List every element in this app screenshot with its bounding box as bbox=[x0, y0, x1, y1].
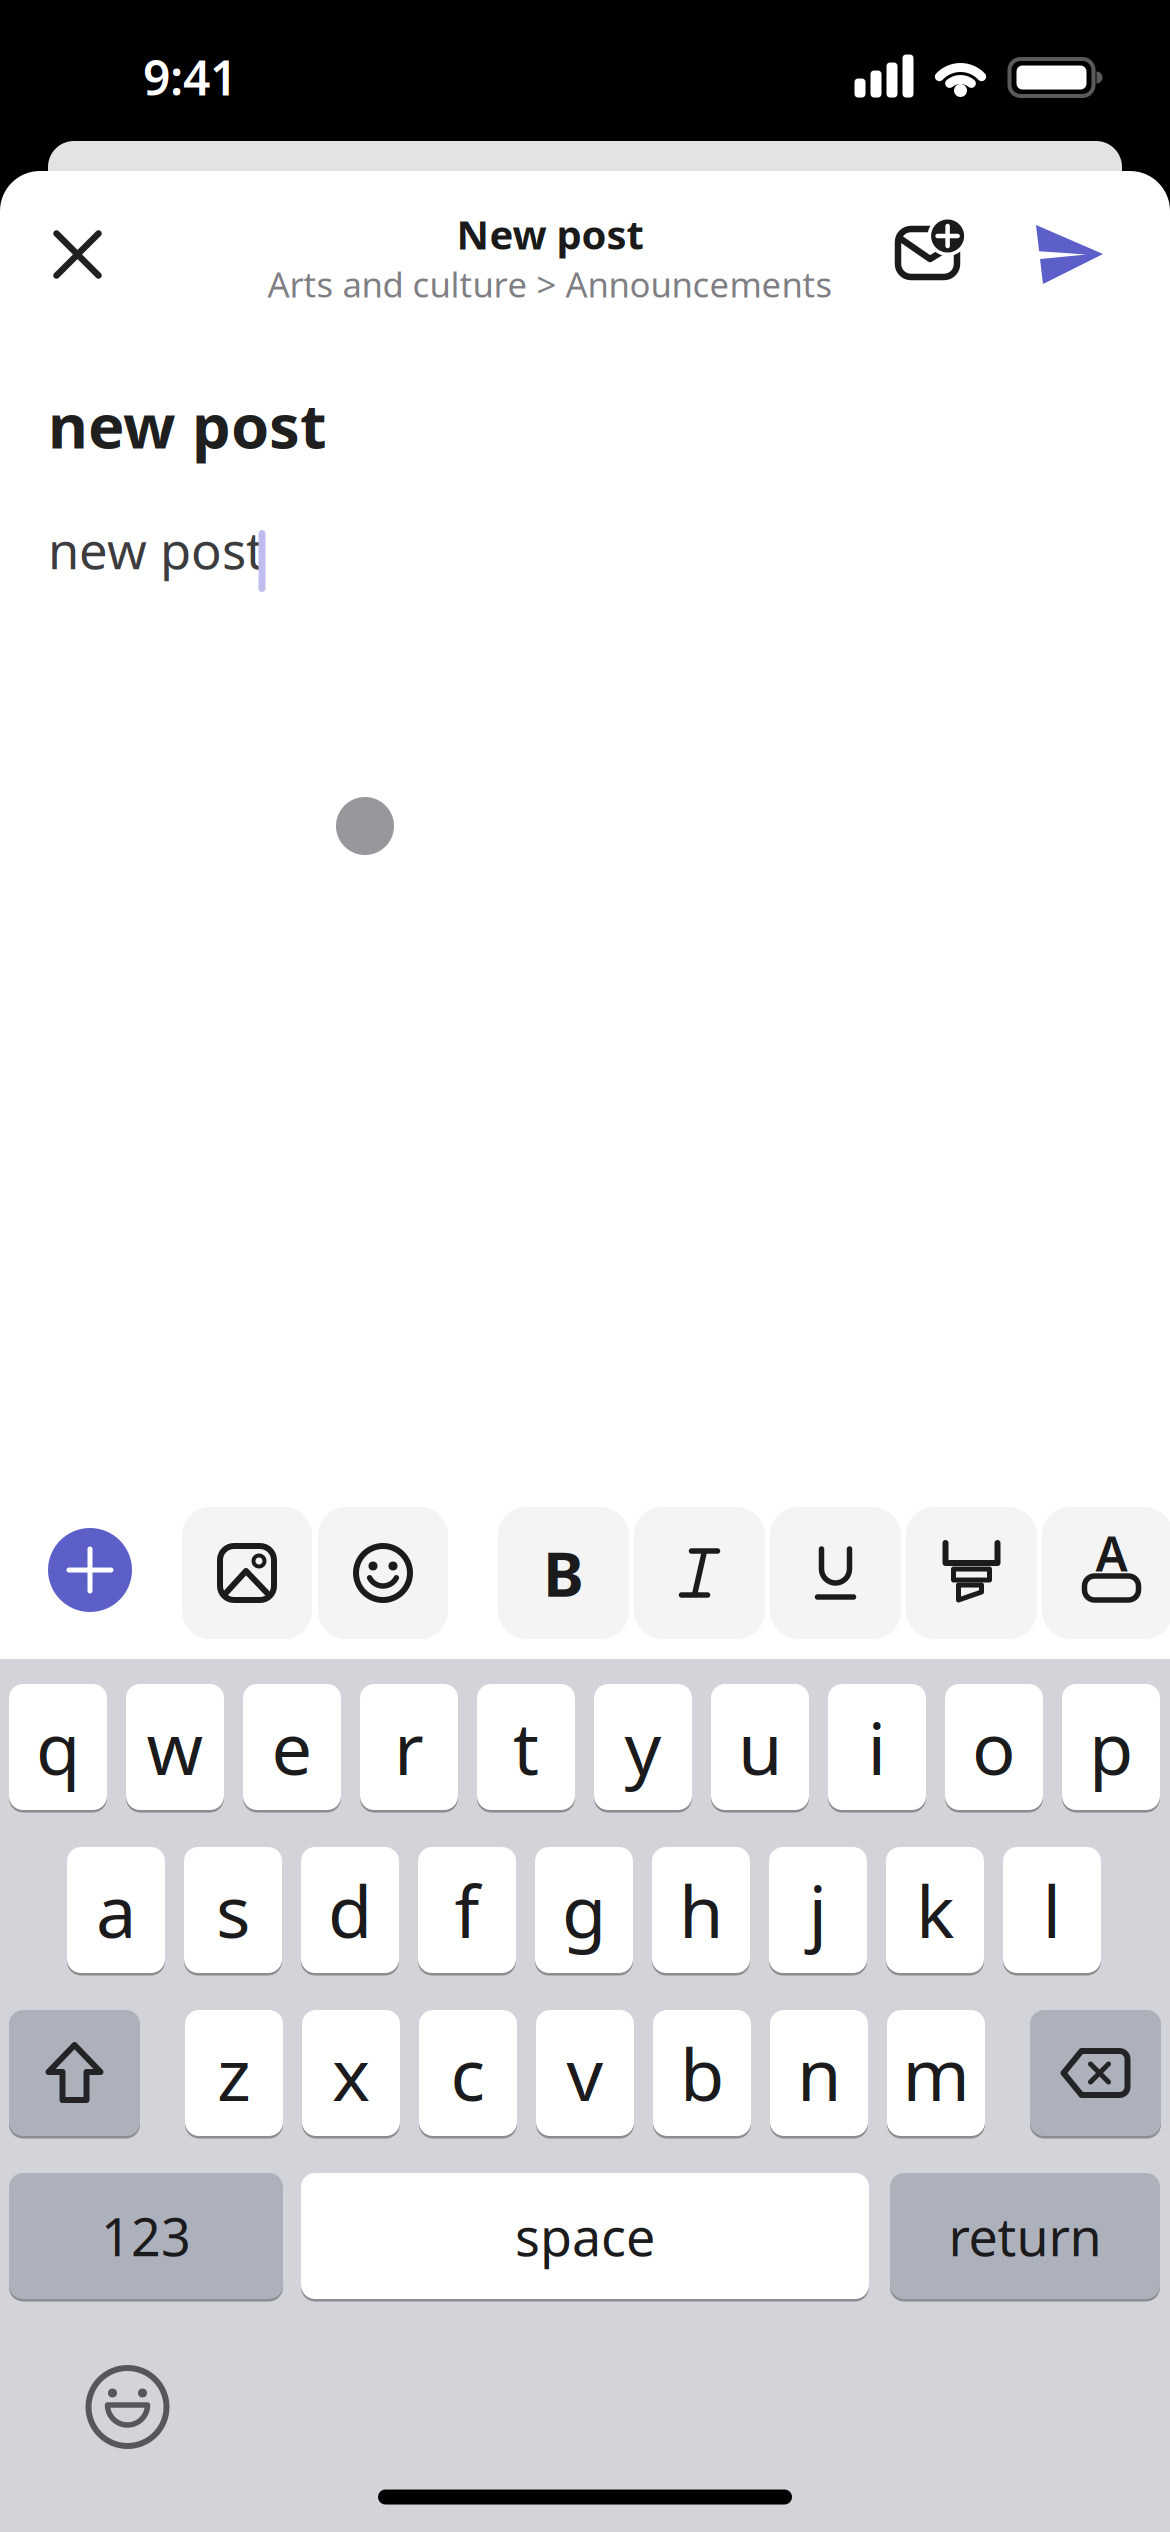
button[interactable] bbox=[318, 1507, 448, 1639]
staticText: f bbox=[454, 1862, 479, 1958]
staticText: n bbox=[797, 2025, 841, 2121]
button[interactable] bbox=[41, 218, 113, 290]
button[interactable]: f bbox=[418, 1847, 516, 1973]
staticText: s bbox=[216, 1862, 250, 1958]
button[interactable] bbox=[82, 2362, 172, 2452]
button[interactable]: s bbox=[184, 1847, 282, 1973]
staticText: new post bbox=[48, 384, 327, 465]
staticText: return bbox=[948, 2201, 1101, 2271]
button[interactable]: j bbox=[769, 1847, 867, 1973]
button[interactable]: c bbox=[419, 2010, 517, 2136]
button[interactable] bbox=[906, 1507, 1037, 1639]
staticText: u bbox=[738, 1699, 782, 1795]
button[interactable]: e bbox=[243, 1684, 341, 1810]
staticText: 123 bbox=[101, 2201, 191, 2271]
button[interactable]: x bbox=[302, 2010, 400, 2136]
staticText: m bbox=[902, 2025, 969, 2121]
staticText: t bbox=[513, 1699, 539, 1795]
button[interactable]: p bbox=[1062, 1684, 1160, 1810]
button[interactable]: h bbox=[652, 1847, 750, 1973]
staticText: 9:41 bbox=[143, 45, 237, 109]
staticText: v bbox=[566, 2025, 603, 2121]
staticText: r bbox=[394, 1699, 424, 1795]
button[interactable] bbox=[48, 1528, 132, 1612]
button[interactable]: space bbox=[301, 2173, 869, 2299]
button[interactable]: v bbox=[536, 2010, 634, 2136]
button[interactable] bbox=[1030, 2010, 1161, 2136]
button[interactable]: m bbox=[887, 2010, 985, 2136]
staticText: d bbox=[328, 1862, 372, 1958]
button[interactable]: d bbox=[301, 1847, 399, 1973]
button[interactable]: i bbox=[828, 1684, 926, 1810]
button[interactable]: u bbox=[711, 1684, 809, 1810]
button[interactable]: k bbox=[886, 1847, 984, 1973]
button[interactable]: B bbox=[498, 1507, 629, 1639]
button[interactable]: w bbox=[126, 1684, 224, 1810]
button[interactable]: r bbox=[360, 1684, 458, 1810]
staticText: o bbox=[972, 1699, 1016, 1795]
staticText: c bbox=[450, 2025, 485, 2121]
staticText: h bbox=[679, 1862, 723, 1958]
button[interactable]: y bbox=[594, 1684, 692, 1810]
button[interactable]: o bbox=[945, 1684, 1043, 1810]
staticText: Arts and culture > Announcements bbox=[267, 261, 832, 307]
button[interactable] bbox=[770, 1507, 901, 1639]
staticText: z bbox=[217, 2025, 251, 2121]
button[interactable]: A bbox=[1042, 1507, 1170, 1639]
staticText: new post bbox=[48, 516, 264, 583]
staticText: a bbox=[96, 1862, 136, 1958]
button[interactable]: q bbox=[9, 1684, 107, 1810]
button[interactable] bbox=[1026, 219, 1110, 289]
staticText: A bbox=[1095, 1521, 1127, 1585]
button[interactable] bbox=[182, 1507, 312, 1639]
button[interactable] bbox=[9, 2010, 140, 2136]
button[interactable]: return bbox=[890, 2173, 1160, 2299]
button[interactable]: a bbox=[67, 1847, 165, 1973]
staticText: e bbox=[271, 1699, 312, 1795]
button[interactable]: b bbox=[653, 2010, 751, 2136]
button[interactable]: g bbox=[535, 1847, 633, 1973]
button[interactable]: z bbox=[185, 2010, 283, 2136]
staticText: i bbox=[867, 1699, 886, 1795]
staticText: j bbox=[808, 1862, 827, 1958]
staticText: space bbox=[515, 2201, 655, 2271]
button[interactable]: t bbox=[477, 1684, 575, 1810]
staticText: B bbox=[543, 1532, 584, 1614]
staticText: g bbox=[562, 1862, 606, 1958]
button[interactable]: n bbox=[770, 2010, 868, 2136]
staticText: New post bbox=[456, 207, 643, 260]
button[interactable]: 123 bbox=[9, 2173, 283, 2299]
staticText: q bbox=[36, 1699, 80, 1795]
staticText: k bbox=[916, 1862, 954, 1958]
staticText: y bbox=[624, 1699, 661, 1795]
button[interactable] bbox=[896, 218, 986, 288]
button[interactable]: l bbox=[1003, 1847, 1101, 1973]
staticText: w bbox=[146, 1699, 203, 1795]
staticText: b bbox=[680, 2025, 724, 2121]
staticText: x bbox=[332, 2025, 370, 2121]
button[interactable] bbox=[634, 1507, 765, 1639]
staticText: p bbox=[1089, 1699, 1133, 1795]
staticText: l bbox=[1042, 1862, 1061, 1958]
